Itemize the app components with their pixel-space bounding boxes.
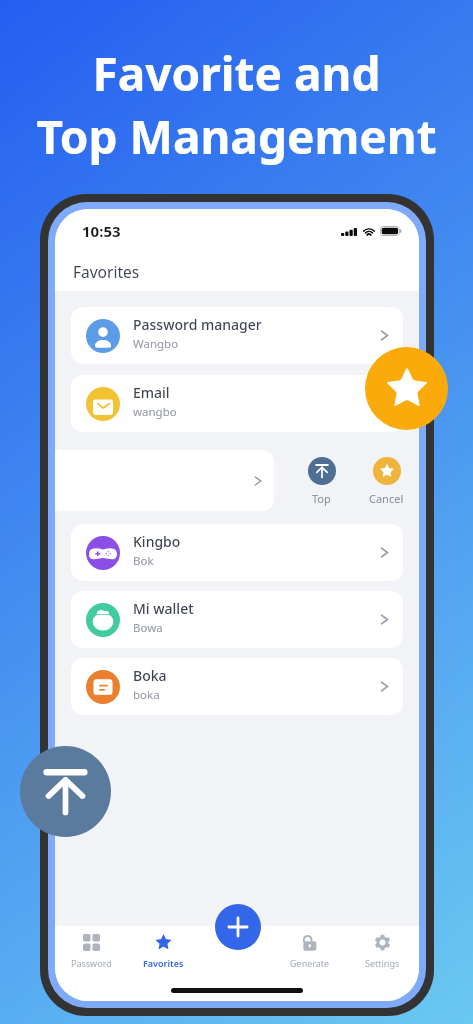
- staticText: Kingbo: [133, 532, 181, 551]
- staticText: 10:53: [82, 221, 121, 241]
- button[interactable]: Cancel: [354, 457, 419, 506]
- button[interactable]: Email: [71, 375, 403, 432]
- button[interactable]: Boka: [71, 658, 403, 715]
- staticText: Email: [133, 383, 170, 402]
- staticText: Settings: [365, 957, 400, 969]
- staticText: boka: [133, 687, 160, 703]
- button[interactable]: [55, 450, 274, 511]
- staticText: Cancel: [369, 491, 404, 506]
- staticText: Top Management: [36, 105, 437, 168]
- staticText: Boka: [133, 666, 167, 685]
- staticText: Bowa: [133, 620, 163, 636]
- staticText: Mi wallet: [133, 599, 194, 618]
- staticText: Favorites: [73, 261, 140, 282]
- staticText: Favorites: [143, 957, 184, 969]
- staticText: Password: [71, 957, 112, 969]
- staticText: wangbo: [133, 404, 177, 420]
- staticText: Favorite and: [92, 42, 381, 105]
- button[interactable]: Generate: [273, 934, 346, 969]
- button[interactable]: Password manager: [71, 307, 403, 364]
- button[interactable]: Mi wallet: [71, 591, 403, 648]
- button[interactable]: Add: [215, 904, 261, 950]
- button[interactable]: Top: [289, 457, 354, 506]
- staticText: Password manager: [133, 315, 262, 334]
- button[interactable]: Kingbo: [71, 524, 403, 581]
- button[interactable]: Password: [55, 934, 127, 969]
- button[interactable]: Move to top: [20, 746, 111, 837]
- staticText: Bok: [133, 553, 154, 569]
- button[interactable]: Favorite: [365, 347, 448, 430]
- staticText: Wangbo: [133, 336, 179, 352]
- button[interactable]: Settings: [346, 934, 419, 969]
- staticText: Generate: [290, 957, 330, 969]
- staticText: Top: [312, 491, 331, 506]
- button[interactable]: Favorites: [127, 934, 200, 969]
